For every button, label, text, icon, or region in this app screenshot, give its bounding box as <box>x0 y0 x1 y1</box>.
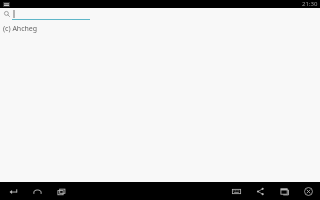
button[interactable]: Back <box>6 184 20 198</box>
staticText: 21:30 <box>302 0 318 8</box>
other: Search <box>4 11 10 17</box>
button[interactable]: Screenshot <box>277 184 291 198</box>
staticText: (c) Ahcheg <box>3 24 38 34</box>
button[interactable]: Search <box>0 8 320 22</box>
button[interactable]: Share <box>253 184 267 198</box>
button[interactable]: Close <box>301 184 315 198</box>
button[interactable]: Keyboard <box>229 184 243 198</box>
button[interactable]: Home <box>30 184 44 198</box>
button[interactable]: Recent apps <box>54 184 68 198</box>
